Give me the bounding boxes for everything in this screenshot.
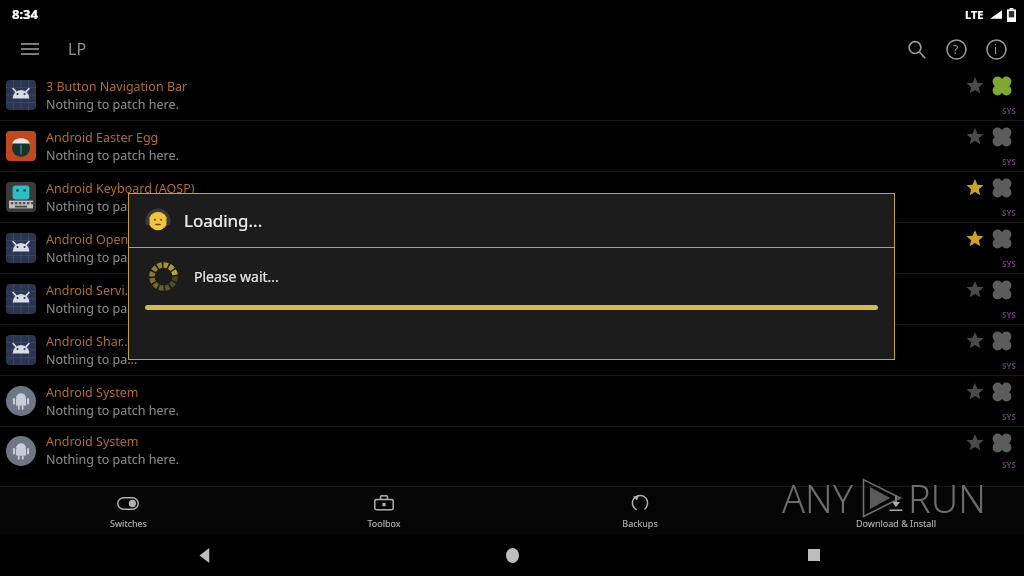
staticText: Android Shar...	[46, 333, 131, 350]
button[interactable]: Loading...	[129, 194, 894, 359]
staticText: Android Easter Egg	[46, 129, 159, 146]
staticText: SYS	[1002, 459, 1016, 470]
button[interactable]: Home	[492, 535, 532, 575]
staticText: SYS	[1002, 156, 1016, 167]
button[interactable]: Android Open...	[0, 223, 1024, 273]
button[interactable]: Backups	[512, 486, 768, 534]
staticText: Nothing to pa...	[46, 300, 138, 317]
staticText: Nothing to patch here.	[46, 147, 179, 164]
staticText: SYS	[1002, 411, 1016, 422]
button[interactable]: Android Shar...	[0, 325, 1024, 375]
staticText: Android System	[46, 433, 139, 450]
staticText: Switches	[110, 517, 147, 529]
button[interactable]: About	[976, 29, 1016, 69]
button[interactable]: Open navigation menu	[12, 31, 48, 67]
staticText: Download & Install	[856, 517, 936, 529]
staticText: Android Open...	[46, 231, 139, 248]
staticText: Nothing to pa...	[46, 249, 138, 266]
staticText: Backups	[622, 517, 658, 529]
staticText: Nothing to pa...	[46, 351, 138, 368]
staticText: i	[994, 41, 998, 57]
button[interactable]: Android System	[0, 427, 1024, 474]
staticText: Loading...	[184, 209, 263, 232]
staticText: Toolbox	[367, 517, 401, 529]
staticText: 8:34	[12, 5, 38, 23]
staticText: LTE	[965, 7, 984, 22]
staticText: Nothing to patch here.	[46, 96, 179, 113]
button[interactable]: Help	[936, 29, 976, 69]
staticText: SYS	[1002, 360, 1016, 371]
staticText: Android System	[46, 384, 139, 401]
staticText: Nothing to patch here.	[46, 198, 179, 215]
button[interactable]: Back	[185, 535, 225, 575]
button[interactable]: Toolbox	[256, 486, 512, 534]
staticText: RUN	[908, 472, 986, 524]
button[interactable]: Android Easter Egg	[0, 121, 1024, 171]
button[interactable]: 3 Button Navigation Bar	[0, 70, 1024, 120]
button[interactable]: Search	[896, 29, 936, 69]
button[interactable]: Switches	[0, 486, 256, 534]
button[interactable]: Recent apps	[794, 535, 834, 575]
button[interactable]: Android Servi...	[0, 274, 1024, 324]
staticText: Android Servi...	[46, 282, 135, 299]
button[interactable]: Download & Install	[768, 486, 1024, 534]
staticText: ?	[953, 41, 959, 57]
staticText: LP	[68, 38, 87, 60]
staticText: Please wait...	[194, 267, 279, 286]
staticText: SYS	[1002, 105, 1016, 116]
button[interactable]: Android System	[0, 376, 1024, 426]
staticText: SYS	[1002, 309, 1016, 320]
button[interactable]: Android Keyboard (AOSP)	[0, 172, 1024, 222]
staticText: ANY	[782, 472, 854, 524]
staticText: SYS	[1002, 207, 1016, 218]
staticText: Nothing to patch here.	[46, 402, 179, 419]
staticText: Android Keyboard (AOSP)	[46, 180, 195, 197]
staticText: Nothing to patch here.	[46, 451, 179, 468]
staticText: SYS	[1002, 258, 1016, 269]
staticText: 3 Button Navigation Bar	[46, 78, 188, 95]
